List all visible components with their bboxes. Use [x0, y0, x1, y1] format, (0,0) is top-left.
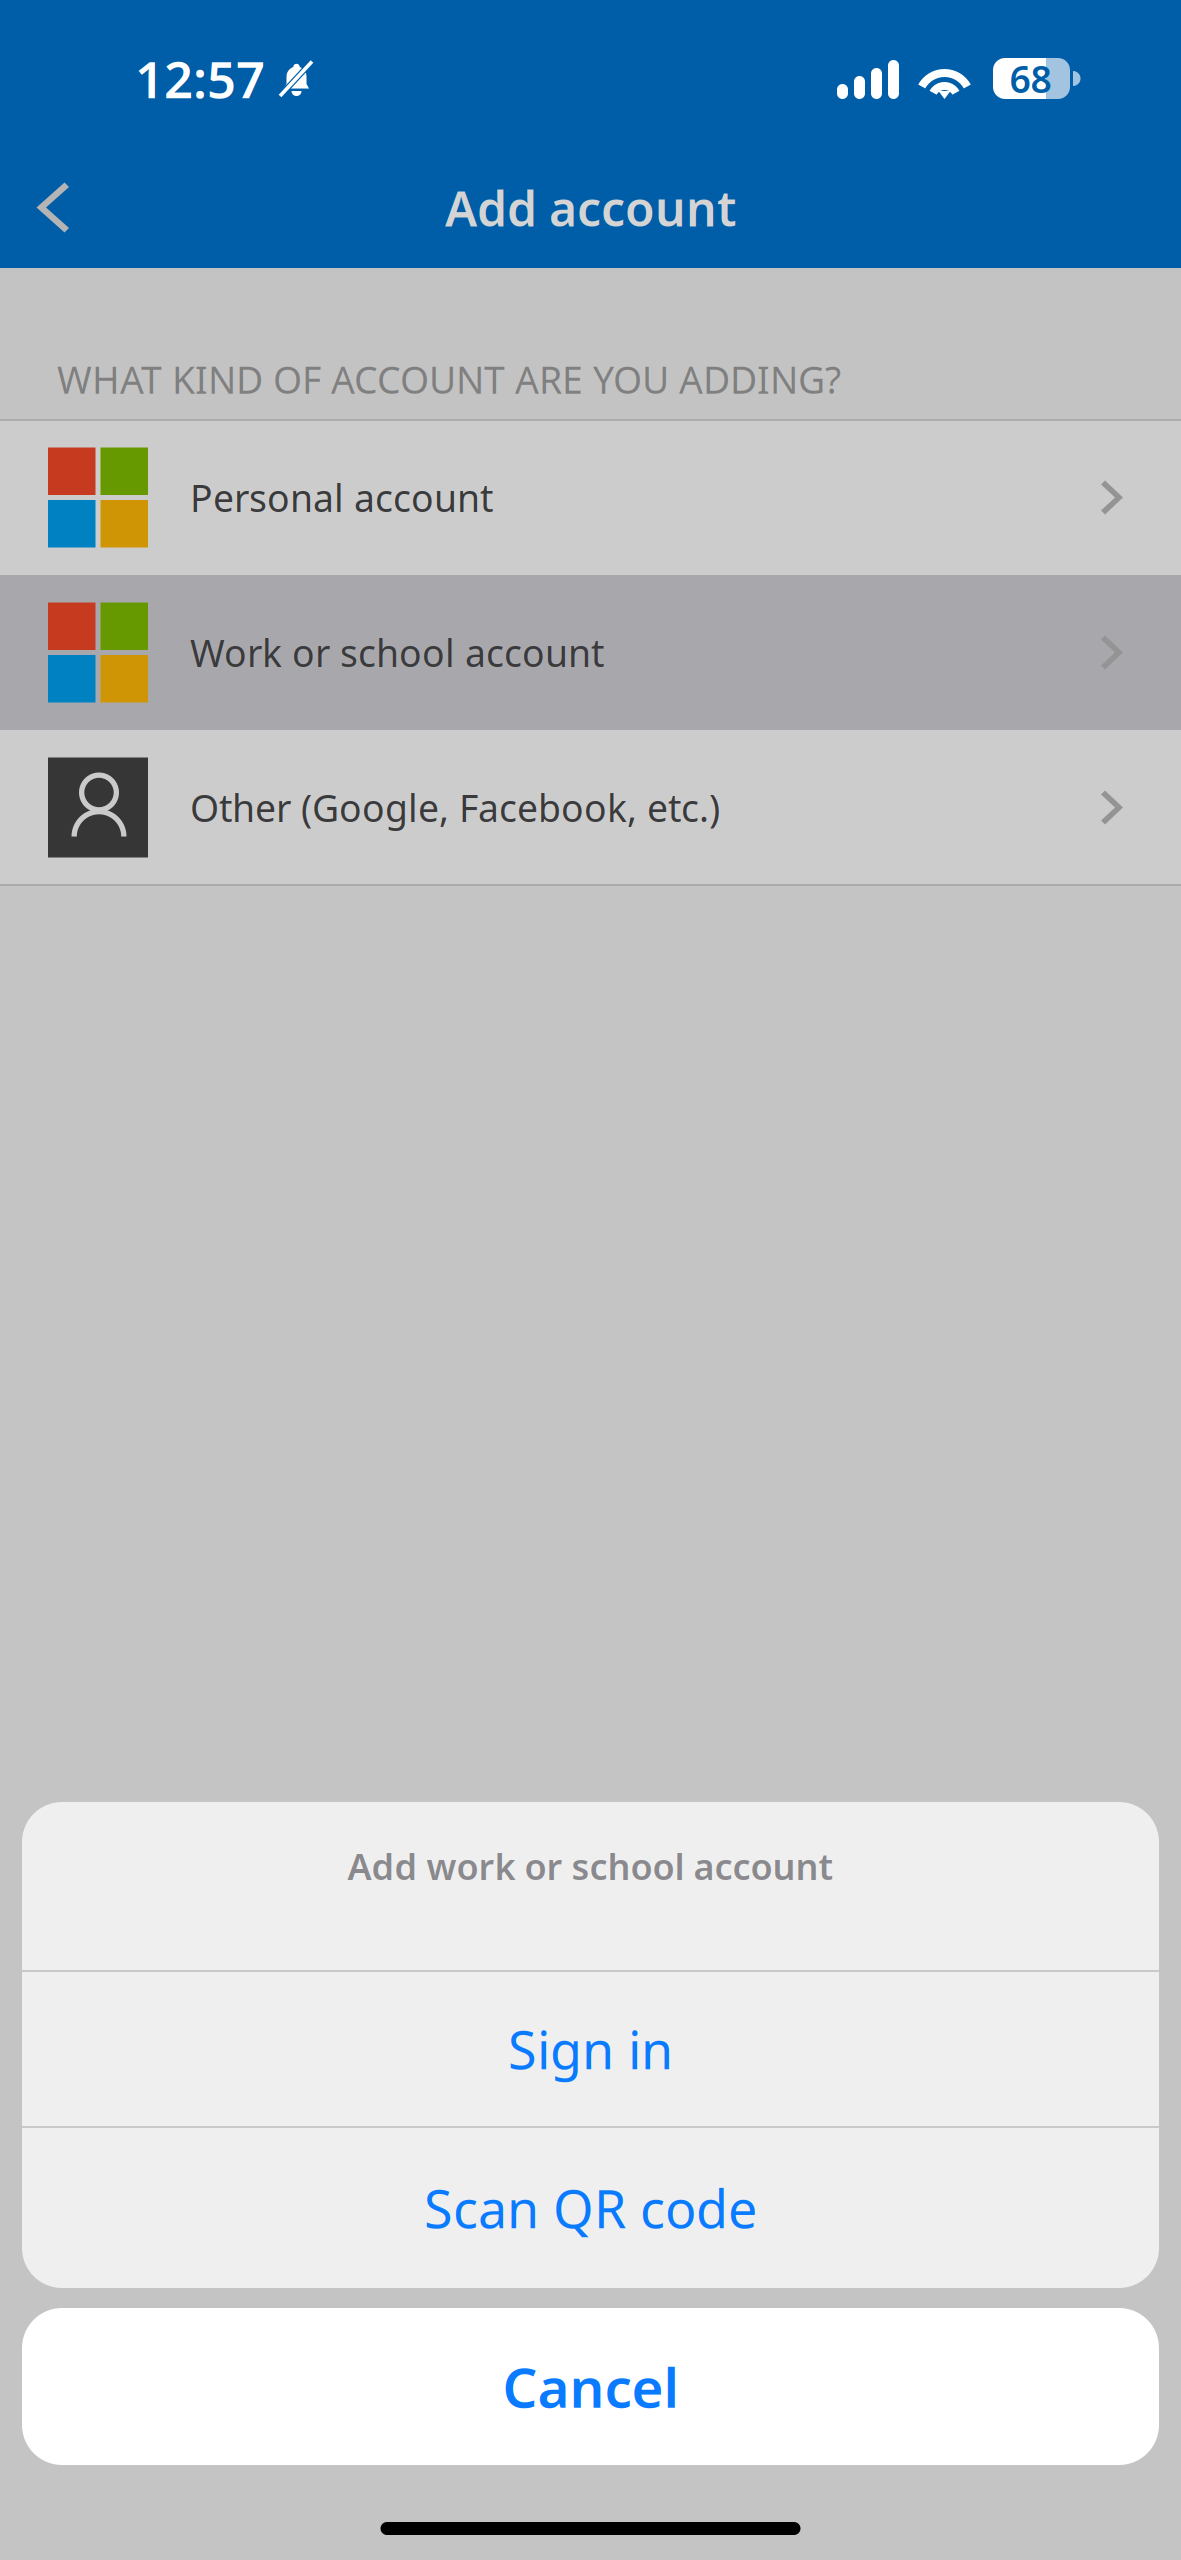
staticText: 68 — [1009, 54, 1051, 103]
staticText: Add account — [445, 176, 736, 240]
staticText: Work or school account — [190, 628, 604, 677]
staticText: Sign in — [508, 2014, 673, 2084]
button[interactable]: Work or school account — [0, 575, 1181, 730]
button[interactable]: Back — [0, 156, 110, 260]
staticText: Cancel — [502, 2350, 678, 2423]
staticText: WHAT KIND OF ACCOUNT ARE YOU ADDING? — [57, 354, 841, 404]
button[interactable]: Personal account — [0, 420, 1181, 575]
staticText: 12:57 — [135, 45, 265, 112]
staticText: Scan QR code — [424, 2173, 757, 2243]
staticText: Personal account — [190, 473, 493, 522]
button[interactable]: Sign in — [22, 1972, 1159, 2126]
button[interactable]: Other (Google, Facebook, etc.) — [0, 730, 1181, 885]
staticText: Add work or school account — [347, 1842, 833, 1890]
button[interactable]: Scan QR code — [22, 2128, 1159, 2288]
button[interactable]: Cancel — [22, 2308, 1159, 2465]
staticText: Other (Google, Facebook, etc.) — [190, 783, 720, 832]
